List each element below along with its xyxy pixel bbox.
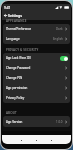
staticText: Change Password <box>6 66 31 70</box>
staticText: App Version <box>6 120 23 124</box>
button[interactable]: Language <box>3 34 70 44</box>
staticText: App permission <box>6 86 28 90</box>
staticText: Privacy Policy <box>6 96 25 100</box>
staticText: Change PIN <box>6 76 23 80</box>
button[interactable]: Change Password <box>3 63 70 73</box>
staticText: Theme/Preference <box>6 27 32 31</box>
button[interactable]: Back <box>3 13 8 18</box>
staticText: APPEARANCE <box>6 19 27 23</box>
staticText: Language <box>6 37 20 41</box>
staticText: 1.0.0 <box>56 120 63 124</box>
staticText: ABOUT <box>6 111 17 115</box>
staticText: App Lock (Face ID) <box>6 56 31 60</box>
staticText: 9:41 <box>4 6 11 10</box>
staticText: Settings <box>8 13 22 18</box>
button[interactable]: App Version <box>3 116 70 127</box>
staticText: Dark <box>56 27 63 31</box>
staticText: English <box>53 37 63 41</box>
staticText: PRIVACY & SECURITY <box>6 48 39 52</box>
button[interactable]: Change PIN <box>3 73 70 83</box>
button[interactable]: App Lock (Face ID) <box>3 53 70 63</box>
button[interactable]: Privacy Policy <box>3 93 70 103</box>
button[interactable]: App permission <box>3 83 70 93</box>
button[interactable]: Theme/Preference <box>3 24 70 34</box>
